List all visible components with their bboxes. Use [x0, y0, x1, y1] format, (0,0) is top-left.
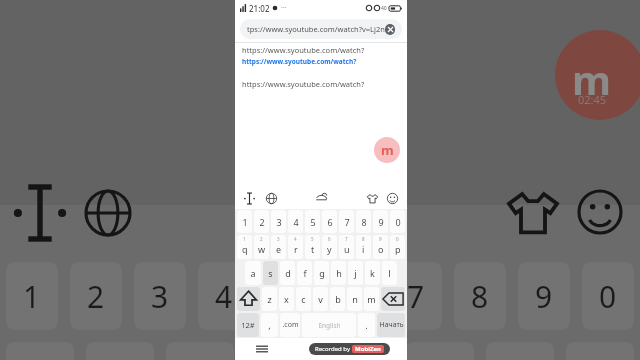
staticText: r	[294, 243, 298, 255]
button[interactable]: 5	[262, 262, 314, 330]
button[interactable]: 7	[390, 262, 442, 330]
staticText: https://www.syoutube.com/watch?v=Lj2nwW3…	[242, 45, 407, 55]
button[interactable]: .	[358, 313, 375, 337]
button[interactable]: 8	[356, 210, 371, 233]
button[interactable]: j	[348, 261, 363, 285]
button[interactable]: English	[302, 313, 356, 337]
button[interactable]: 12#	[237, 313, 259, 337]
staticText: a	[250, 267, 256, 279]
staticText: u	[344, 243, 350, 255]
button[interactable]: 4	[288, 210, 303, 233]
button[interactable]: Clipboard	[315, 192, 328, 205]
button[interactable]: https://www.syoutube.com/watch?v=Lj2nwW3…	[242, 43, 407, 56]
button[interactable]: https://www.syoutube.com/watch?v=Lj2nwW3…	[242, 77, 407, 90]
staticText: p	[395, 243, 401, 255]
staticText: 9	[378, 216, 384, 228]
staticText: 12#	[241, 320, 255, 330]
button[interactable]: 8	[454, 262, 506, 330]
staticText: .	[365, 319, 368, 331]
staticText: n	[352, 293, 358, 305]
staticText: 9	[379, 236, 382, 242]
staticText: ,	[268, 319, 271, 331]
button[interactable]: .com	[280, 313, 300, 337]
button[interactable]: 2	[254, 210, 269, 233]
button[interactable]: 4	[198, 262, 250, 330]
button[interactable]: d	[280, 261, 295, 285]
button[interactable]: 4	[288, 235, 303, 259]
button[interactable]: 2	[70, 262, 122, 330]
staticText: 3	[276, 216, 282, 228]
staticText: 1	[23, 276, 41, 317]
button[interactable]: 1	[6, 262, 58, 330]
button[interactable]: v	[313, 287, 328, 311]
button[interactable]: s	[263, 261, 278, 285]
staticText: l	[388, 267, 391, 279]
button[interactable]: Clear	[385, 24, 395, 35]
button[interactable]: Начать	[377, 313, 405, 337]
button[interactable]: Themes	[366, 192, 379, 205]
staticText: s	[268, 267, 273, 279]
staticText: y	[327, 243, 332, 255]
staticText: k	[370, 267, 375, 279]
staticText: t	[311, 243, 315, 255]
staticText: 40	[381, 5, 387, 12]
button[interactable]: Language	[265, 192, 278, 205]
button[interactable]: g	[314, 261, 329, 285]
button[interactable]: x	[279, 287, 294, 311]
button[interactable]: h	[331, 261, 346, 285]
staticText: 8	[362, 236, 365, 242]
button[interactable]: 0	[390, 235, 405, 259]
button[interactable]: l	[382, 261, 397, 285]
button[interactable]: a	[245, 261, 261, 285]
button[interactable]: 2	[254, 235, 269, 259]
staticText: 6	[327, 216, 333, 228]
staticText: 7	[407, 276, 425, 317]
staticText: m	[572, 52, 611, 106]
button[interactable]: 3	[271, 210, 286, 233]
button[interactable]: 9	[373, 235, 388, 259]
button[interactable]: 3	[134, 262, 186, 330]
staticText: 2	[87, 276, 105, 317]
button[interactable]: https://www.syoutube.com/watch?v=Lj2nwW3…	[242, 56, 407, 67]
button[interactable]: 0	[582, 262, 634, 330]
button[interactable]: 6	[322, 210, 337, 233]
button[interactable]: 9	[373, 210, 388, 233]
button[interactable]: 5	[305, 235, 320, 259]
button[interactable]: n	[347, 287, 362, 311]
button[interactable]: Backspace	[381, 287, 405, 311]
button[interactable]: 5	[305, 210, 320, 233]
staticText: English	[318, 321, 341, 330]
button[interactable]: 3	[271, 235, 286, 259]
staticText: 5	[310, 216, 316, 228]
staticText: f	[303, 267, 307, 279]
button[interactable]: Emoji	[386, 192, 399, 205]
button[interactable]: 7	[339, 235, 354, 259]
button[interactable]: 1	[237, 210, 252, 233]
button[interactable]: f	[297, 261, 312, 285]
staticText: 4	[293, 216, 299, 228]
button[interactable]: tps://www.syoutube.com/watch?v=Lj2n	[240, 19, 402, 39]
staticText: 0	[395, 216, 401, 228]
button[interactable]: Menu	[255, 342, 269, 356]
button[interactable]: 8	[356, 235, 371, 259]
button[interactable]: k	[365, 261, 380, 285]
button[interactable]: ,	[261, 313, 278, 337]
button[interactable]: b	[330, 287, 345, 311]
button[interactable]: 6	[322, 235, 337, 259]
staticText: 3	[151, 276, 169, 317]
button[interactable]: 1	[237, 235, 252, 259]
button[interactable]: 6	[326, 262, 378, 330]
staticText: c	[301, 293, 306, 305]
staticText: m	[367, 293, 376, 305]
staticText: j	[354, 267, 357, 279]
button[interactable]: Text edit	[243, 192, 256, 205]
staticText: z	[267, 293, 272, 305]
button[interactable]: m	[364, 287, 379, 311]
button[interactable]: 7	[339, 210, 354, 233]
button[interactable]: 0	[390, 210, 405, 233]
button[interactable]: Shift	[237, 287, 260, 311]
button[interactable]: 9	[518, 262, 570, 330]
button[interactable]: c	[296, 287, 311, 311]
staticText: i	[362, 243, 365, 255]
button[interactable]: z	[262, 287, 277, 311]
